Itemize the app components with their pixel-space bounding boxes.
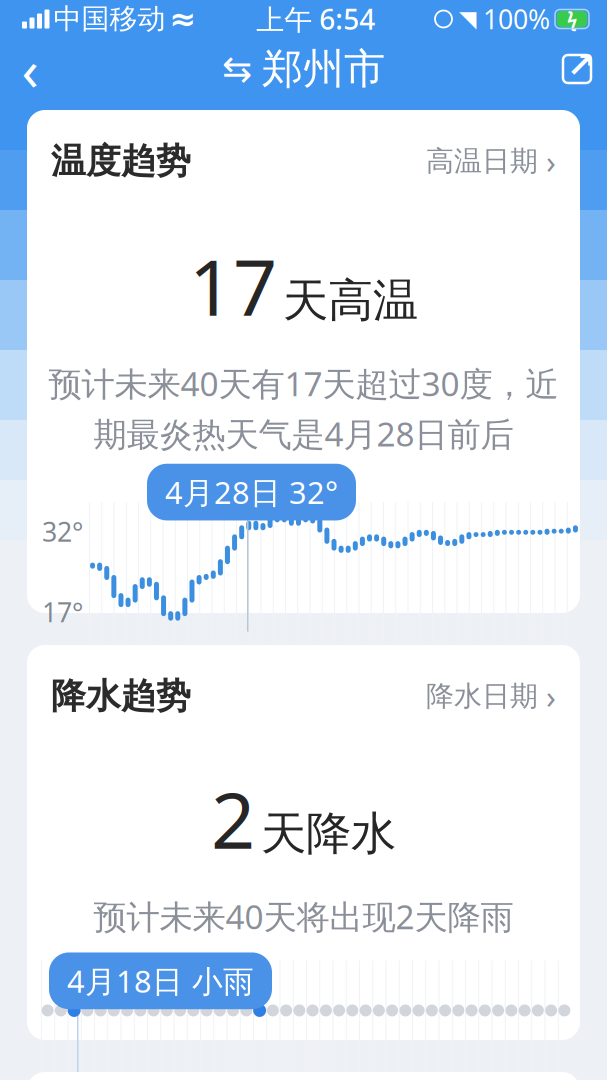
staticText: 4月28日 32° <box>165 472 338 512</box>
button[interactable]: 高温日期 <box>426 136 556 186</box>
staticText: 05.13 <box>381 660 444 693</box>
staticText: 降水日期 <box>426 679 538 713</box>
staticText: 05.25 <box>501 660 564 693</box>
staticText: › <box>546 140 556 182</box>
staticText: › <box>546 675 556 717</box>
staticText: 高温日期 <box>426 144 538 178</box>
staticText: ⇆ <box>222 49 252 89</box>
staticText: 4月18日 小雨 <box>67 960 254 1001</box>
staticText: 中国移动 <box>53 2 165 36</box>
button[interactable]: Share <box>547 40 607 98</box>
staticText: 预计未来40天有17天超过30度，近 <box>48 361 558 405</box>
staticText: 降水趋势 <box>51 675 191 718</box>
staticText: ϟ <box>567 7 577 31</box>
staticText: ‹ <box>21 32 38 106</box>
staticText: 温度趋势 <box>51 140 191 183</box>
staticText: ≈ <box>169 1 196 37</box>
button[interactable]: 降水日期 <box>426 671 556 721</box>
staticText: 2 <box>211 767 255 870</box>
staticText: 32° <box>42 514 83 549</box>
staticText: 天降水 <box>261 806 396 862</box>
staticText: 郑州市 <box>262 44 385 94</box>
button[interactable]: Back <box>0 40 60 98</box>
staticText: 100% <box>483 1 550 37</box>
staticText: 04.16 <box>101 660 164 693</box>
staticText: 预计未来40天将出现2天降雨 <box>93 894 513 938</box>
staticText: 天高温 <box>283 273 418 329</box>
staticText: 17° <box>42 594 83 630</box>
staticText: 17 <box>189 234 277 337</box>
staticText: ↗ <box>566 45 595 85</box>
staticText: ◥ <box>459 6 476 32</box>
button[interactable]: ⇆ <box>212 38 395 100</box>
staticText: 期最炎热天气是4月28日前后 <box>93 411 513 456</box>
staticText: 上午 6:54 <box>256 0 375 38</box>
